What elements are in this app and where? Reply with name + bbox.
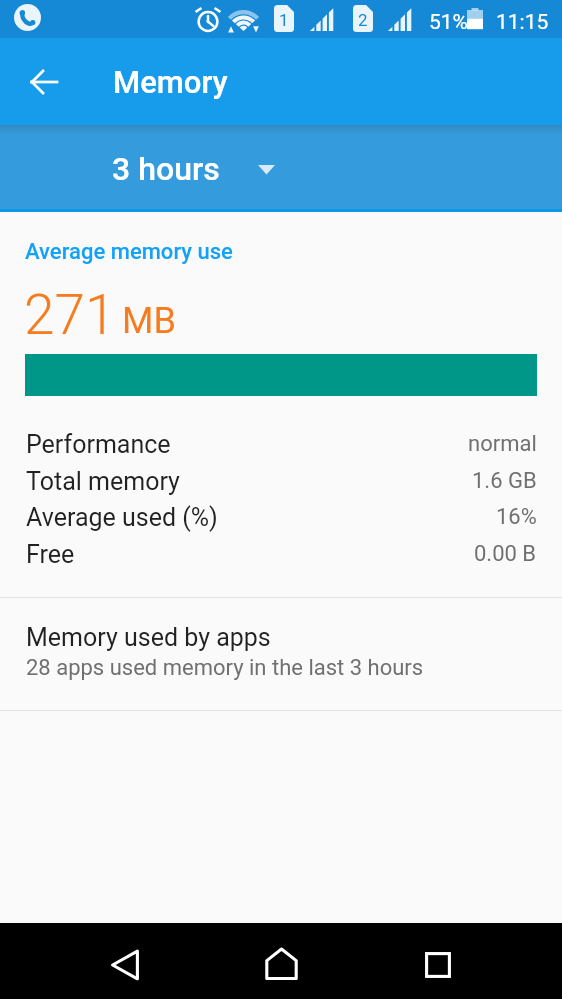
staticText: normal [468,431,537,457]
button[interactable]: Back [87,934,164,996]
staticText: Memory [113,64,228,100]
staticText: Average used (%) [26,503,218,532]
staticText: Performance [26,430,171,459]
staticText: 3 hours [112,150,220,188]
button[interactable]: Memory used by apps [0,598,562,710]
staticText: 271 [24,283,116,347]
staticText: 0.00 B [474,541,537,567]
staticText: Average memory use [25,239,233,265]
staticText: 51% [429,10,468,35]
staticText: 11:15 [496,10,549,35]
button[interactable]: Recent apps [399,934,476,996]
staticText: Total memory [26,467,180,496]
button[interactable]: Navigate up [15,53,73,111]
button[interactable]: Home [243,933,320,995]
staticText: Memory used by apps [26,623,271,652]
staticText: 1.6 GB [472,468,537,494]
staticText: 28 apps used memory in the last 3 hours [26,655,424,681]
staticText: 16% [496,504,537,530]
staticText: 2 [358,10,368,30]
button[interactable]: 3 hours [96,134,291,204]
staticText: MB [122,300,176,342]
staticText: Free [26,540,75,569]
staticText: 1 [279,10,289,30]
